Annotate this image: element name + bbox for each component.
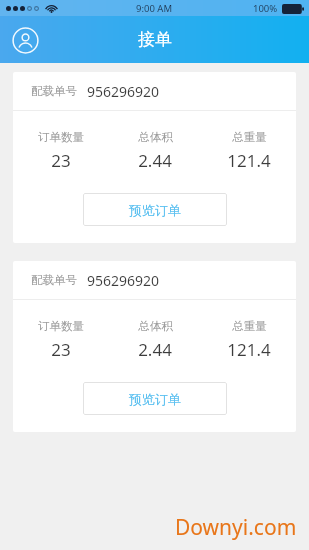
button[interactable]: 预览订单 xyxy=(83,193,227,226)
staticText: 9:00 AM xyxy=(136,2,173,15)
staticText: 订单数量 xyxy=(38,319,84,333)
staticText: Downyi.com xyxy=(175,513,297,542)
staticText: 配载单号 xyxy=(31,273,77,287)
staticText: 2.44 xyxy=(138,149,172,172)
staticText: 配载单号 xyxy=(31,84,77,98)
staticText: 总体积 xyxy=(138,319,173,333)
button[interactable]: 预览订单 xyxy=(83,382,227,415)
staticText: 接单 xyxy=(138,29,172,50)
staticText: 100% xyxy=(253,2,278,15)
staticText: 总重量 xyxy=(232,319,267,333)
staticText: 956296920 xyxy=(87,271,160,290)
button[interactable]: Profile xyxy=(9,24,41,56)
staticText: 订单数量 xyxy=(38,130,84,144)
staticText: 23 xyxy=(51,149,71,172)
staticText: 2.44 xyxy=(138,338,172,361)
staticText: 总体积 xyxy=(138,130,173,144)
staticText: 956296920 xyxy=(87,82,160,101)
staticText: 预览订单 xyxy=(129,391,181,407)
staticText: 121.4 xyxy=(227,338,271,361)
staticText: 23 xyxy=(51,338,71,361)
staticText: 121.4 xyxy=(227,149,271,172)
staticText: 预览订单 xyxy=(129,202,181,218)
staticText: 总重量 xyxy=(232,130,267,144)
